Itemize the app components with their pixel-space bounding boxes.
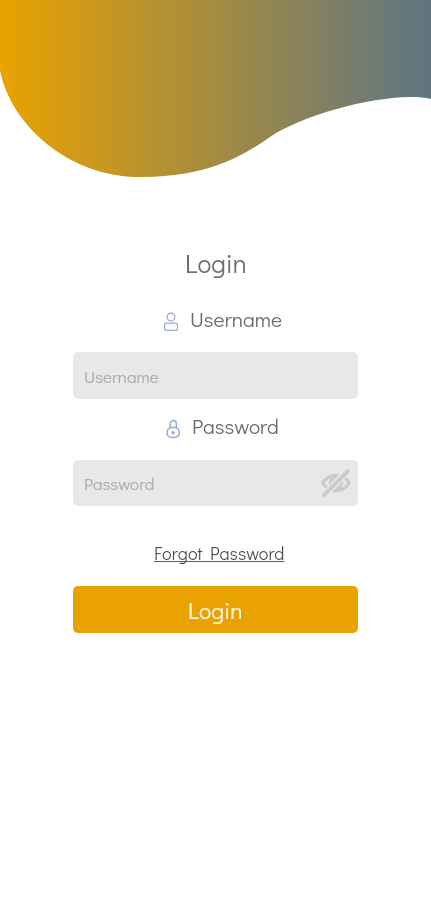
staticText: Username (84, 365, 159, 387)
button[interactable]: Forgot Password (154, 541, 285, 565)
staticText: Login (188, 595, 243, 625)
button[interactable]: Login (73, 586, 358, 633)
staticText: Forgot Password (154, 541, 285, 565)
button[interactable]: Password (73, 460, 358, 506)
staticText: Password (84, 472, 155, 494)
button[interactable]: Show password (320, 467, 352, 499)
staticText: Login (185, 246, 247, 280)
button[interactable]: Password (166, 412, 279, 440)
staticText: Username (190, 305, 283, 333)
button[interactable]: Username (73, 352, 358, 399)
button[interactable]: Username (164, 305, 283, 333)
staticText: Password (192, 412, 279, 440)
